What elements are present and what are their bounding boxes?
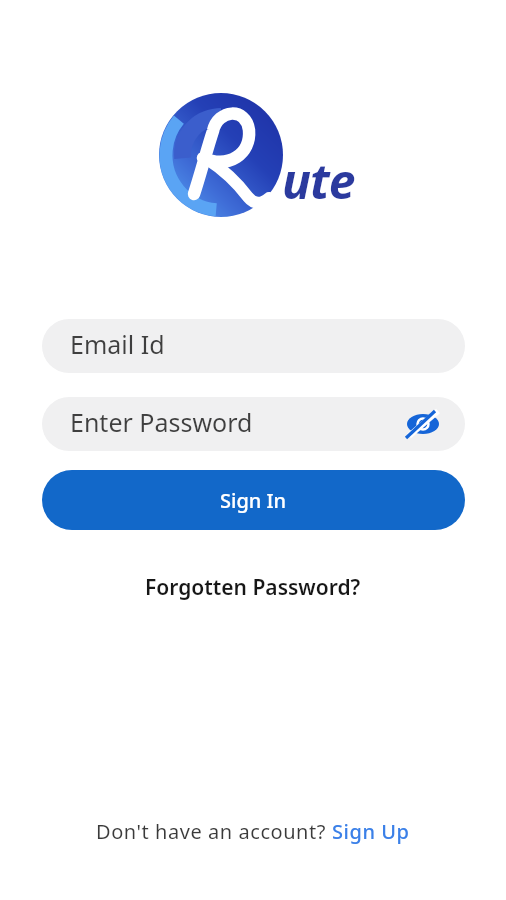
- button[interactable]: Sign Up: [332, 818, 410, 845]
- button[interactable]: Forgotten Password?: [145, 573, 361, 602]
- button[interactable]: Enter Password: [42, 397, 465, 451]
- staticText: Enter Password: [70, 405, 253, 439]
- staticText: Email Id: [70, 327, 165, 361]
- staticText: Sign In: [220, 487, 287, 514]
- button[interactable]: [406, 410, 440, 438]
- button[interactable]: Sign In: [42, 470, 465, 530]
- staticText: ute: [282, 148, 355, 213]
- staticText: Don't have an account?: [96, 818, 332, 845]
- button[interactable]: Email Id: [42, 319, 465, 373]
